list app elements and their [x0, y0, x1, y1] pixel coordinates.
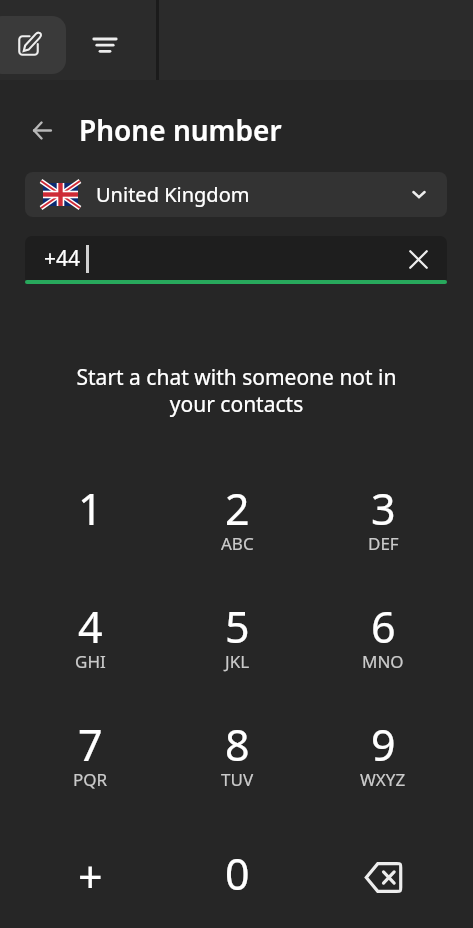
- staticText: DEF: [368, 532, 399, 555]
- button[interactable]: Filter: [79, 22, 131, 69]
- staticText: 4: [78, 597, 103, 656]
- button[interactable]: 3: [310, 463, 456, 581]
- button[interactable]: 5: [164, 581, 310, 699]
- button[interactable]: 6: [310, 581, 456, 699]
- staticText: 8: [225, 715, 250, 774]
- staticText: TUV: [221, 768, 254, 791]
- staticText: WXYZ: [360, 768, 406, 791]
- staticText: 5: [225, 597, 250, 656]
- staticText: 6: [371, 597, 396, 656]
- staticText: 7: [78, 715, 103, 774]
- button[interactable]: 4: [17, 581, 164, 699]
- staticText: 2: [225, 479, 250, 538]
- button[interactable]: +44: [25, 236, 447, 281]
- staticText: PQR: [73, 768, 108, 791]
- staticText: 3: [371, 479, 396, 538]
- staticText: 1: [78, 479, 103, 538]
- staticText: +44: [44, 244, 81, 273]
- button[interactable]: New chat: [0, 16, 66, 74]
- staticText: United Kingdom: [96, 181, 250, 208]
- button[interactable]: 8: [164, 699, 310, 817]
- button[interactable]: Back: [25, 113, 59, 147]
- staticText: 9: [371, 715, 396, 774]
- staticText: GHI: [75, 650, 106, 673]
- staticText: Start a chat with someone not in your co…: [0, 363, 473, 418]
- button[interactable]: 2: [164, 463, 310, 581]
- button[interactable]: 1: [17, 463, 164, 581]
- staticText: +: [78, 847, 103, 906]
- button[interactable]: Clear: [398, 239, 438, 279]
- button[interactable]: Backspace: [310, 817, 456, 928]
- button[interactable]: 0: [164, 817, 310, 928]
- button[interactable]: 7: [17, 699, 164, 817]
- staticText: MNO: [362, 650, 404, 673]
- staticText: Phone number: [79, 111, 282, 149]
- button[interactable]: +: [17, 817, 164, 928]
- button[interactable]: 9: [310, 699, 456, 817]
- button[interactable]: United Kingdom: [25, 172, 447, 217]
- staticText: 0: [225, 844, 250, 903]
- staticText: JKL: [225, 650, 250, 673]
- staticText: ABC: [221, 532, 254, 555]
